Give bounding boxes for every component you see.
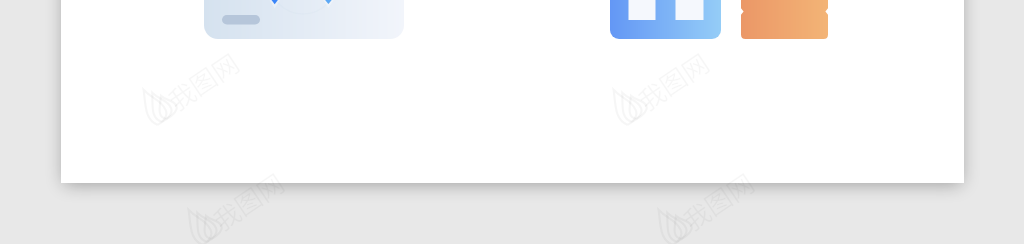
button[interactable]: Phone mockup preview xyxy=(204,0,404,39)
button[interactable]: Gallery xyxy=(610,0,721,39)
button[interactable]: Coupon xyxy=(741,0,828,39)
